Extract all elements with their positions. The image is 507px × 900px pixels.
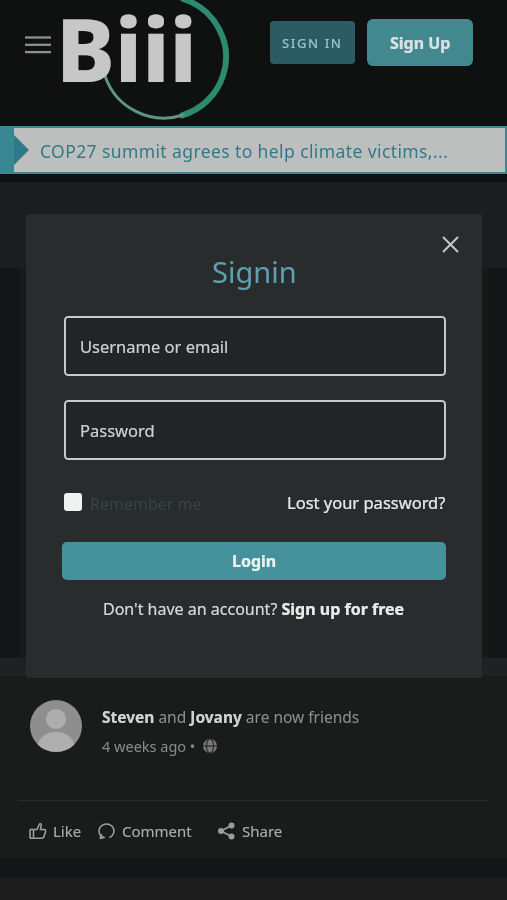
button[interactable] — [18, 30, 58, 60]
staticText: 4 weeks ago • — [102, 736, 196, 756]
staticText: Login — [232, 550, 277, 572]
staticText: Like — [53, 821, 82, 841]
staticText: Comment — [122, 821, 192, 841]
button[interactable]: Don't have an account? Sign up for free — [103, 598, 405, 620]
button[interactable]: COP27 summit agrees to help climate vict… — [0, 126, 507, 174]
button[interactable]: Lost your password? — [287, 491, 446, 513]
button[interactable] — [436, 230, 464, 258]
button[interactable]: Login — [62, 542, 446, 580]
button[interactable]: Username or email — [64, 316, 446, 376]
button[interactable]: SIGN IN — [270, 21, 355, 64]
staticText: COP27 summit agrees to help climate vict… — [40, 139, 449, 163]
button[interactable] — [64, 493, 82, 511]
staticText: SIGN IN — [282, 34, 343, 52]
staticText: Password — [80, 419, 155, 441]
staticText: Steven and Jovany are now friends — [102, 706, 360, 727]
staticText: Biii — [56, 0, 197, 108]
button[interactable]: Password — [64, 400, 446, 460]
button[interactable]: Sign Up — [367, 19, 473, 66]
staticText: Share — [242, 821, 283, 841]
button[interactable]: Comment — [97, 816, 192, 846]
staticText: Remember me — [90, 493, 202, 515]
staticText: Signin — [212, 252, 297, 291]
staticText: Username or email — [80, 335, 229, 357]
button[interactable]: Like — [28, 816, 82, 846]
staticText: Sign Up — [390, 32, 451, 54]
button[interactable]: Share — [217, 816, 283, 846]
